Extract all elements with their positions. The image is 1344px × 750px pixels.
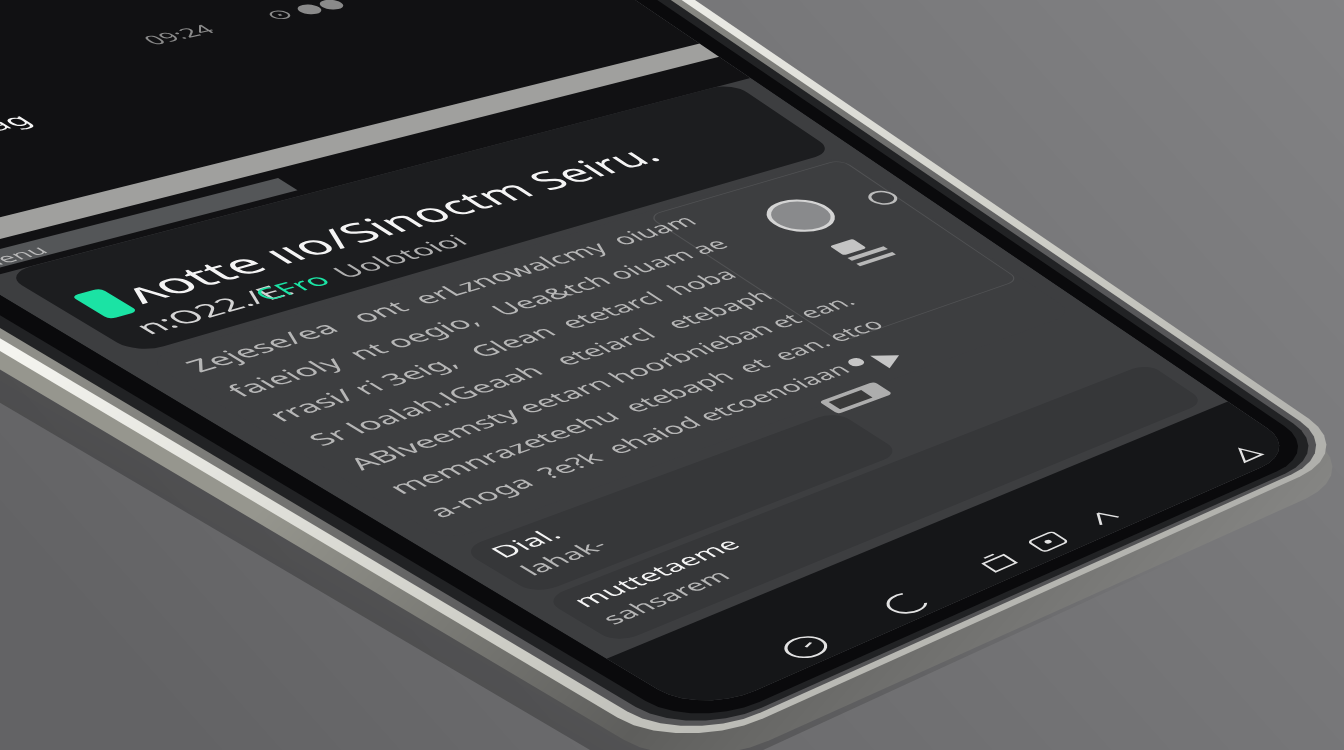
button[interactable]: Expand [1080, 493, 1130, 543]
button[interactable]: Profile [952, 262, 1030, 340]
button[interactable]: More [1218, 426, 1268, 476]
button[interactable]: Recent [782, 623, 832, 673]
button[interactable]: Night mode [882, 578, 932, 628]
button[interactable]: Media [1024, 517, 1074, 567]
button[interactable]: Alerts [974, 538, 1024, 588]
